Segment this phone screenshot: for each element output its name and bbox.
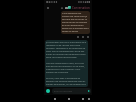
button[interactable]: Recents	[81, 97, 85, 101]
button[interactable]: Share	[60, 6, 64, 10]
button[interactable]: Attach	[46, 89, 50, 93]
button[interactable]: Je comprends que vous avez besoin de le …	[45, 40, 88, 87]
staticText: Ecrire un message	[54, 90, 73, 93]
button[interactable]: Menu	[64, 6, 68, 10]
button[interactable]: Home	[67, 97, 71, 101]
button[interactable]: Back	[53, 97, 57, 101]
button[interactable]: Close	[45, 5, 50, 10]
button[interactable]: Avatar	[68, 6, 71, 9]
button[interactable]: Action	[86, 35, 89, 38]
button[interactable]: Il me demande une mission par cette chat…	[61, 11, 90, 34]
button[interactable]: Action	[76, 35, 79, 38]
staticText: Je comprends que vous avez besoin de le …	[46, 41, 87, 86]
button[interactable]: Action	[81, 35, 84, 38]
button[interactable]: Ecrire un message	[52, 88, 91, 94]
staticText: Conversation	[72, 6, 90, 10]
staticText: Il me demande une mission par cette chat…	[62, 12, 89, 33]
button[interactable]: Menu	[87, 97, 91, 101]
